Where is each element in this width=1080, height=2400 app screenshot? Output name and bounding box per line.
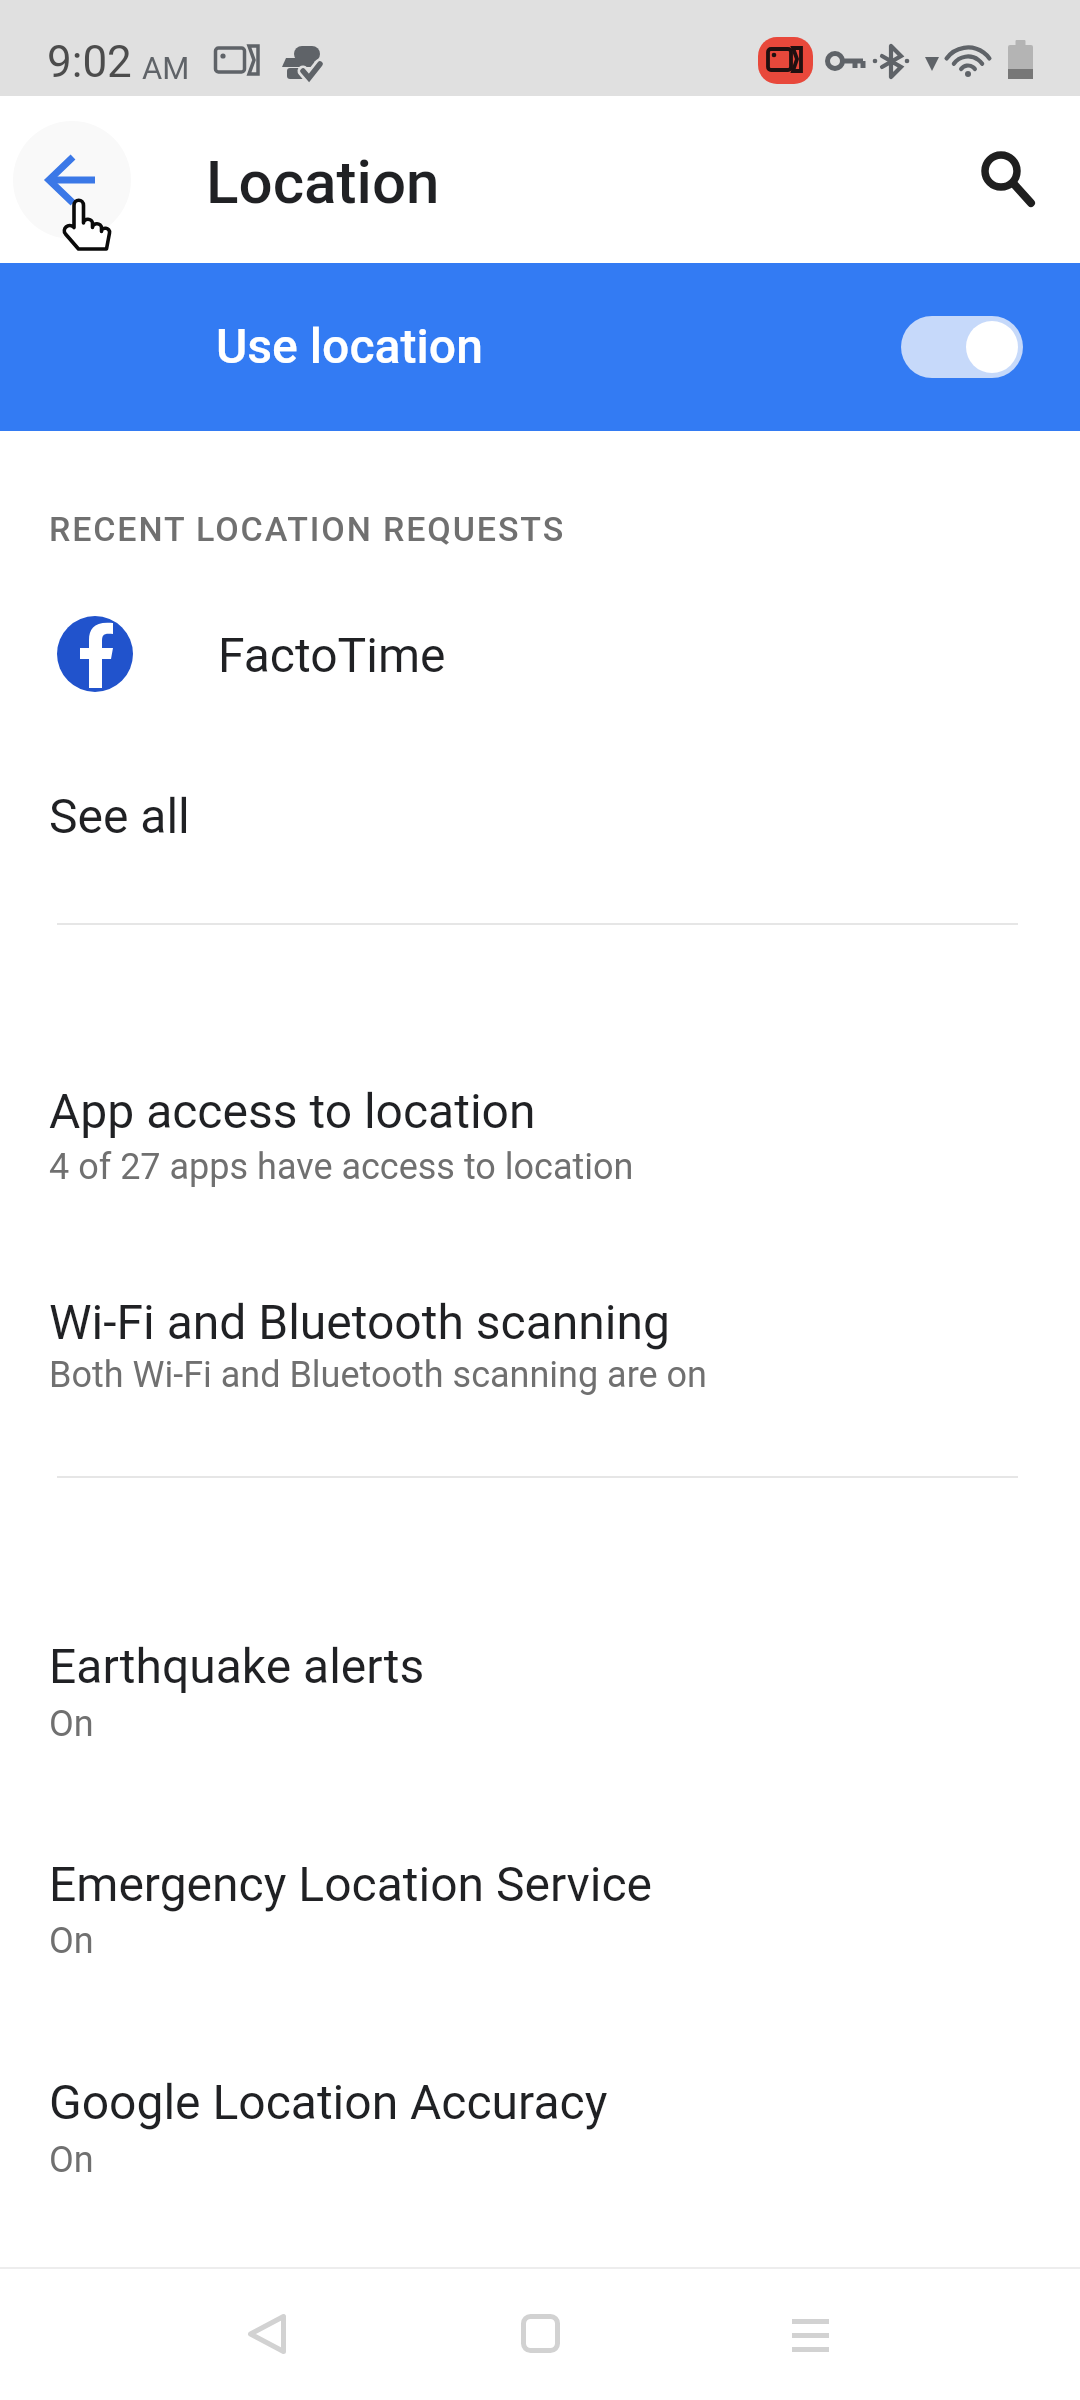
staticText: On [49,2139,94,2181]
button[interactable]: Google Location Accuracy [0,2036,1080,2217]
staticText: Location [206,147,440,217]
staticText: Wi-Fi and Bluetooth scanning [49,1294,670,1350]
button[interactable]: Home [473,2269,607,2400]
staticText: Earthquake alerts [49,1638,425,1694]
button[interactable]: See all [0,770,1080,862]
button[interactable]: Wi-Fi and Bluetooth scanning [0,1256,1080,1432]
button[interactable]: Navigate up [13,121,131,239]
button[interactable]: Back [200,2269,334,2400]
staticText: FactoTime [218,627,446,683]
staticText: 9:02 [47,36,132,88]
button[interactable]: Recent apps [743,2269,877,2400]
staticText: Both Wi-Fi and Bluetooth scanning are on [49,1354,707,1396]
staticText: On [49,1703,94,1745]
button[interactable]: FactoTime [0,600,1080,708]
button[interactable]: Use location toggle, on [901,316,1023,378]
staticText: On [49,1920,94,1962]
staticText: Emergency Location Service [49,1856,653,1912]
button[interactable]: Search [946,114,1062,230]
button[interactable]: App access to location [0,1045,1080,1224]
staticText: 4 of 27 apps have access to location [49,1146,634,1188]
staticText: See all [49,788,190,844]
button[interactable]: Earthquake alerts [0,1600,1080,1781]
staticText: App access to location [49,1083,536,1139]
staticText: RECENT LOCATION REQUESTS [49,509,566,549]
staticText: AM [142,50,190,86]
button[interactable]: Use location [0,263,1080,431]
staticText: Google Location Accuracy [49,2074,608,2130]
staticText: Use location [216,318,483,374]
button[interactable]: Emergency Location Service [0,1818,1080,1998]
